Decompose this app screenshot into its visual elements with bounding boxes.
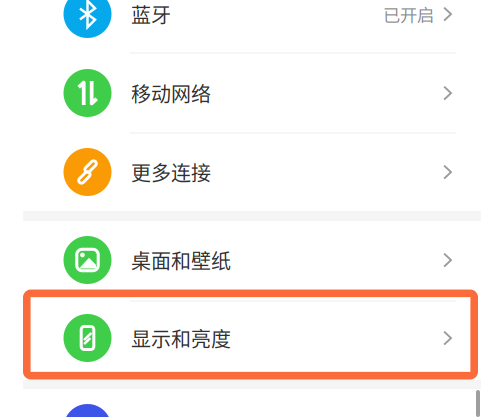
button[interactable]: 显示和亮度 bbox=[23, 301, 481, 380]
staticText: 显示和亮度 bbox=[131, 323, 231, 352]
staticText: 桌面和壁纸 bbox=[131, 245, 231, 274]
button[interactable]: 移动网络 bbox=[23, 53, 481, 133]
staticText: 已开启 bbox=[383, 1, 434, 27]
staticText: 更多连接 bbox=[131, 157, 211, 186]
staticText: 移动网络 bbox=[131, 78, 211, 107]
button[interactable]: 桌面和壁纸 bbox=[23, 221, 481, 301]
staticText: 蓝牙 bbox=[131, 0, 171, 28]
button[interactable]: 蓝牙 bbox=[23, 0, 481, 53]
button[interactable]: 更多连接 bbox=[23, 133, 481, 211]
button[interactable]: 声音和振动 bbox=[23, 389, 481, 417]
